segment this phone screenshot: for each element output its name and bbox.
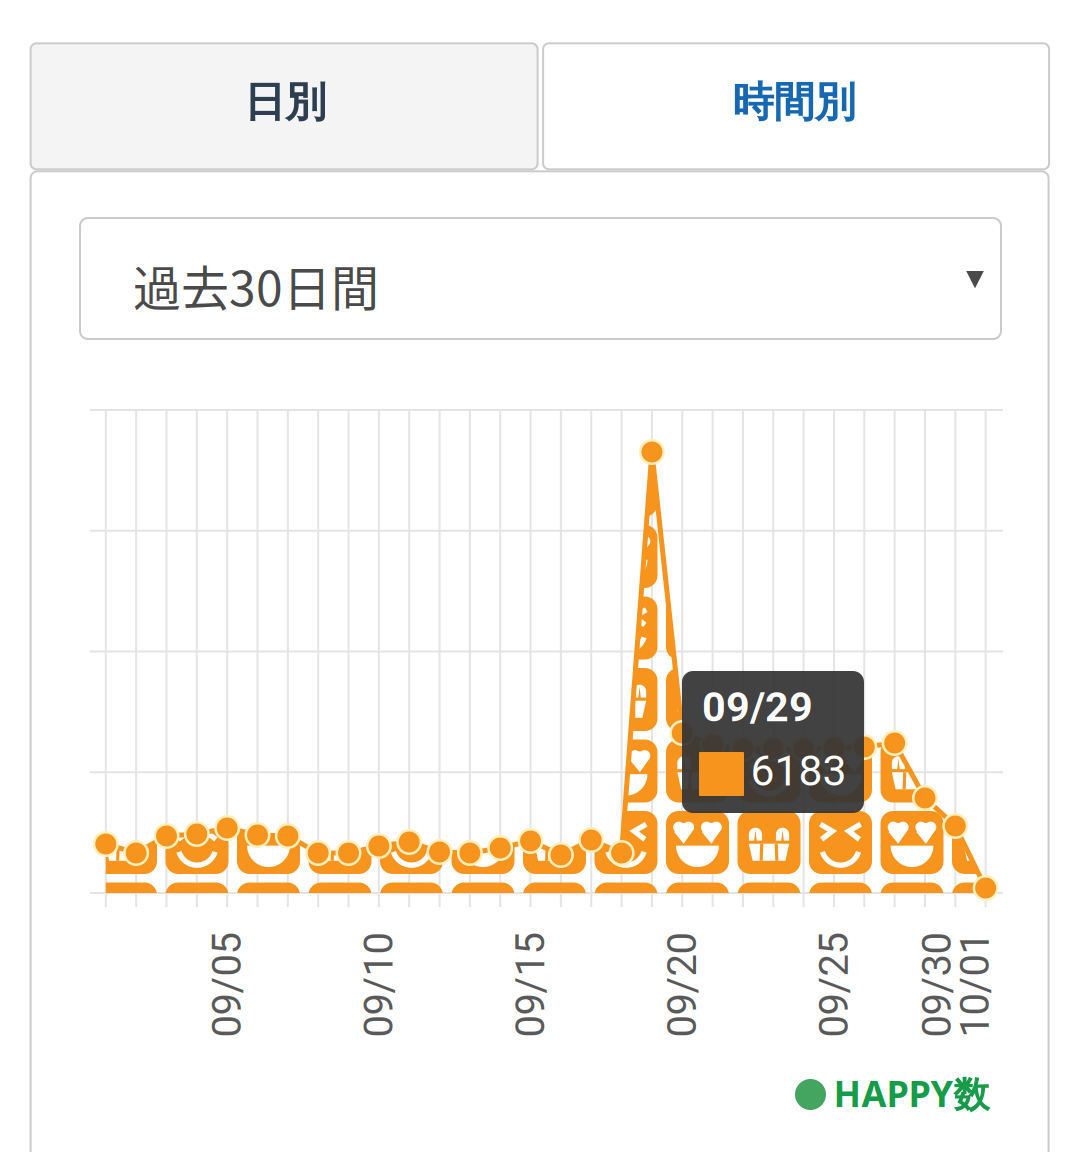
staticText: 10/01 [922,962,1027,1008]
staticText: 6183 [750,746,846,796]
staticText: 09/20 [630,962,735,1008]
staticText: 09/05 [175,962,280,1008]
staticText: 09/25 [781,962,886,1008]
staticText: 時間別 [733,76,856,128]
staticText: 日別 [244,76,326,128]
button[interactable]: 時間別 [543,43,1049,169]
staticText: 09/10 [326,962,431,1008]
staticText: 09/29 [702,683,813,731]
button[interactable]: 過去30日間 [80,218,1001,339]
staticText: 09/30 [884,962,989,1008]
staticText: 09/15 [478,962,583,1008]
staticText: 過去30日間 [133,250,379,320]
button[interactable]: 日別 [31,43,538,169]
staticText: HAPPY数 [833,1068,989,1118]
